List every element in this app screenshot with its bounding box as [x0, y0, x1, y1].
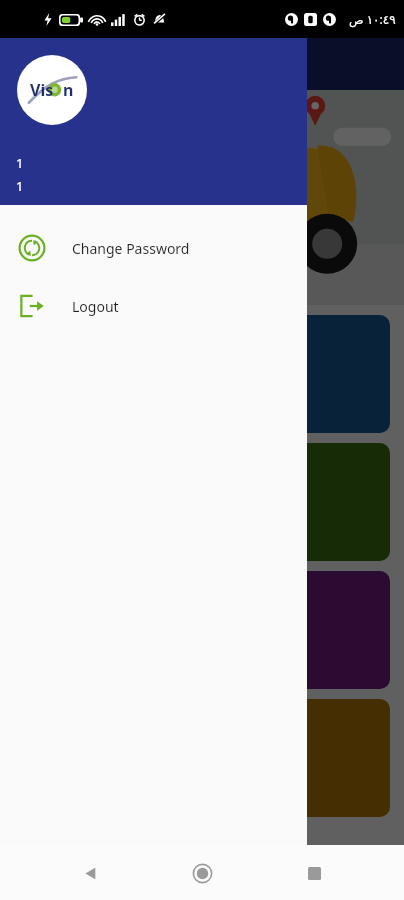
button[interactable]: Exams: [14, 571, 390, 689]
button[interactable]: Change Password: [0, 219, 307, 277]
button[interactable]: Logout: [0, 277, 307, 335]
staticText: ١٠:٤٩ ص: [349, 11, 396, 27]
staticText: Change Password: [72, 239, 190, 258]
button[interactable]: Back: [70, 853, 110, 893]
staticText: 1: [16, 177, 24, 195]
staticText: n: [63, 79, 74, 101]
button[interactable]: Recent apps: [294, 853, 334, 893]
button[interactable]: Practice: [14, 699, 390, 817]
staticText: Logout: [72, 297, 119, 316]
staticText: 1: [16, 154, 24, 172]
button[interactable]: Home: [182, 853, 222, 893]
staticText: Vis: [30, 79, 54, 101]
other: Logout: [18, 292, 46, 320]
other: Change Password: [18, 234, 46, 262]
button[interactable]: Lesson: [14, 315, 390, 433]
button[interactable]: Training: [14, 443, 390, 561]
